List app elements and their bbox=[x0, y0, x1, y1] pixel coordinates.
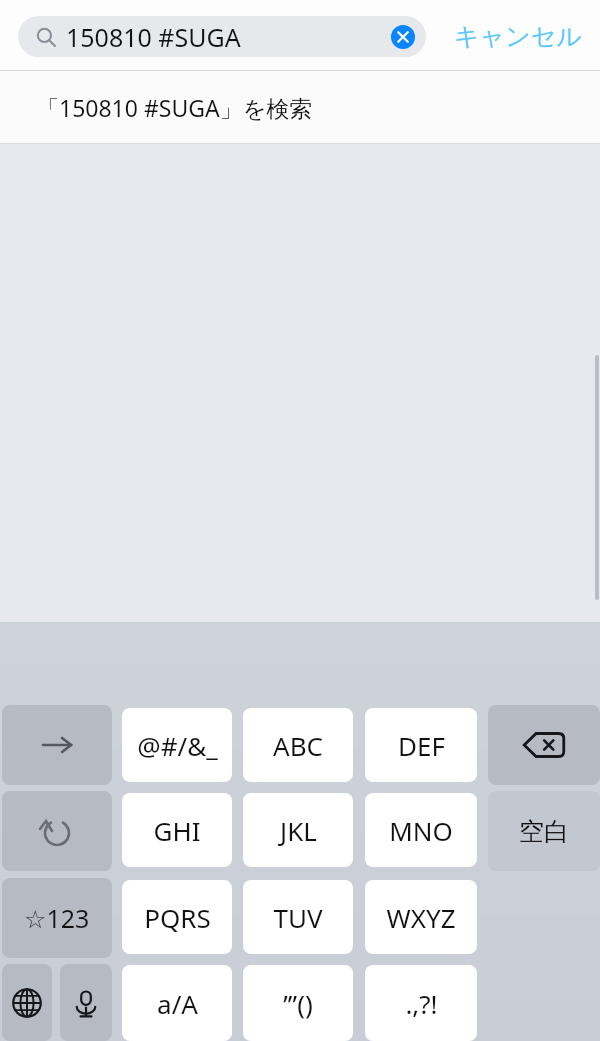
other: Undo bbox=[37, 811, 77, 851]
button[interactable]: PQRS bbox=[122, 880, 232, 954]
button[interactable]: MNO bbox=[365, 793, 477, 867]
button[interactable]: a/A bbox=[122, 965, 232, 1041]
other: Next candidate bbox=[35, 723, 79, 767]
button[interactable]: 空白 bbox=[488, 791, 600, 871]
staticText: ABC bbox=[273, 728, 323, 763]
button[interactable]: WXYZ bbox=[365, 880, 477, 954]
button[interactable]: キャンセル bbox=[440, 10, 590, 62]
staticText: .,?! bbox=[405, 986, 438, 1021]
staticText: PQRS bbox=[144, 900, 211, 935]
button[interactable]: ’”() bbox=[243, 965, 353, 1041]
staticText: GHI bbox=[153, 813, 201, 848]
button[interactable]: TUV bbox=[243, 880, 353, 954]
button[interactable]: GHI bbox=[122, 793, 232, 867]
staticText: 150810 #SUGA bbox=[66, 20, 241, 54]
button[interactable]: 「150810 #SUGA」を検索 bbox=[0, 71, 600, 143]
other: Delete bbox=[521, 722, 567, 768]
staticText: @#/&_ bbox=[137, 728, 218, 763]
staticText: DEF bbox=[398, 728, 445, 763]
button[interactable]: ABC bbox=[243, 708, 353, 782]
button[interactable]: 150810 #SUGA bbox=[18, 16, 426, 57]
staticText: キャンセル bbox=[454, 21, 582, 52]
button[interactable]: @#/&_ bbox=[122, 708, 232, 782]
button[interactable]: Voice input bbox=[60, 964, 112, 1041]
button[interactable]: Delete bbox=[488, 705, 600, 785]
staticText: MNO bbox=[389, 813, 453, 848]
staticText: TUV bbox=[273, 900, 323, 935]
button[interactable]: Switch keyboard bbox=[2, 964, 52, 1041]
button[interactable]: Clear text bbox=[390, 24, 416, 50]
staticText: a/A bbox=[157, 986, 198, 1021]
staticText: WXYZ bbox=[386, 900, 456, 935]
button[interactable]: .,?! bbox=[365, 965, 477, 1041]
staticText: JKL bbox=[280, 813, 317, 848]
button[interactable]: ☆123 bbox=[2, 878, 112, 958]
button[interactable]: Undo bbox=[2, 791, 112, 871]
button[interactable]: JKL bbox=[243, 793, 353, 867]
staticText: 空白 bbox=[519, 816, 569, 847]
button[interactable]: DEF bbox=[365, 708, 477, 782]
staticText: 「150810 #SUGA」を検索 bbox=[36, 92, 313, 123]
staticText: ☆123 bbox=[24, 901, 90, 935]
staticText: ’”() bbox=[283, 986, 313, 1021]
button[interactable]: Next candidate bbox=[2, 705, 112, 785]
